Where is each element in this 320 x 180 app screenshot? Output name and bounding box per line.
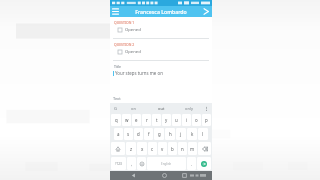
- staticText: y: [165, 117, 168, 123]
- button[interactable]: r: [142, 114, 151, 126]
- button[interactable]: Opened: [113, 25, 209, 35]
- staticText: Francesca Lombardo: [135, 8, 187, 15]
- button[interactable]: Backspace: [198, 142, 211, 155]
- staticText: out: [158, 106, 165, 111]
- button[interactable]: f: [144, 128, 153, 140]
- staticText: v: [161, 146, 164, 152]
- staticText: k: [191, 131, 194, 137]
- staticText: x: [141, 146, 144, 152]
- staticText: p: [205, 117, 208, 123]
- staticText: Opened: [125, 27, 141, 33]
- button[interactable]: k: [187, 128, 197, 140]
- button[interactable]: t: [152, 114, 161, 126]
- button[interactable]: v: [158, 142, 167, 155]
- staticText: ,: [131, 161, 133, 167]
- staticText: c: [151, 146, 154, 152]
- button[interactable]: o: [192, 114, 201, 126]
- button[interactable]: Send: [201, 6, 212, 17]
- staticText: w: [125, 117, 129, 123]
- staticText: q: [115, 117, 118, 123]
- staticText: r: [146, 117, 148, 123]
- button[interactable]: ?123: [111, 157, 126, 170]
- button[interactable]: More suggestions: [203, 105, 210, 112]
- staticText: Your steps turns me on: [115, 70, 163, 76]
- button[interactable]: Space: [147, 157, 186, 170]
- staticText: ?123: [115, 162, 122, 166]
- staticText: G: [114, 106, 118, 112]
- button[interactable]: g: [154, 128, 164, 140]
- button[interactable]: i: [182, 114, 191, 126]
- staticText: j: [180, 131, 182, 137]
- staticText: a: [117, 131, 120, 137]
- staticText: d: [137, 131, 140, 137]
- button[interactable]: out: [147, 103, 175, 113]
- button[interactable]: p: [202, 114, 211, 126]
- button[interactable]: q: [111, 114, 121, 126]
- staticText: s: [127, 131, 130, 137]
- button[interactable]: Opened: [113, 47, 209, 57]
- staticText: English: [161, 162, 172, 166]
- button[interactable]: Send message: [197, 157, 211, 170]
- staticText: Title: [114, 64, 121, 69]
- staticText: m: [190, 146, 195, 152]
- staticText: Text: [113, 96, 121, 101]
- staticText: h: [169, 131, 172, 137]
- button[interactable]: Emoji: [137, 157, 146, 170]
- staticText: f: [148, 131, 150, 137]
- staticText: g: [158, 131, 161, 137]
- staticText: on: [131, 106, 136, 111]
- staticText: o: [195, 117, 198, 123]
- button[interactable]: only: [175, 103, 203, 113]
- button[interactable]: e: [132, 114, 141, 126]
- button[interactable]: h: [165, 128, 175, 140]
- staticText: t: [156, 117, 158, 123]
- button[interactable]: Menu: [110, 6, 121, 17]
- staticText: e: [135, 117, 138, 123]
- staticText: u: [175, 117, 178, 123]
- button[interactable]: ,: [127, 157, 136, 170]
- staticText: QUESTION 1: [114, 20, 135, 25]
- button[interactable]: w: [122, 114, 131, 126]
- button[interactable]: y: [162, 114, 171, 126]
- staticText: Opened: [125, 49, 141, 55]
- button[interactable]: Back: [129, 171, 138, 180]
- button[interactable]: z: [126, 142, 136, 155]
- button[interactable]: n: [178, 142, 187, 155]
- staticText: n: [181, 146, 184, 152]
- staticText: z: [130, 146, 133, 152]
- staticText: .: [191, 161, 193, 167]
- button[interactable]: d: [134, 128, 143, 140]
- button[interactable]: m: [188, 142, 197, 155]
- staticText: QUESTION 2: [114, 42, 135, 47]
- button[interactable]: u: [172, 114, 181, 126]
- button[interactable]: Google search: [112, 105, 119, 112]
- staticText: b: [171, 146, 174, 152]
- button[interactable]: .: [187, 157, 196, 170]
- button[interactable]: c: [148, 142, 157, 155]
- button[interactable]: x: [137, 142, 147, 155]
- button[interactable]: Home: [160, 171, 169, 180]
- button[interactable]: l: [198, 128, 208, 140]
- button[interactable]: Recent apps: [180, 171, 189, 180]
- button[interactable]: s: [124, 128, 133, 140]
- button[interactable]: j: [176, 128, 186, 140]
- button[interactable]: b: [168, 142, 177, 155]
- staticText: i: [186, 117, 188, 123]
- staticText: only: [185, 106, 193, 111]
- staticText: l: [202, 131, 204, 137]
- button[interactable]: on: [119, 103, 147, 113]
- button[interactable]: Shift: [111, 142, 125, 155]
- button[interactable]: a: [114, 128, 123, 140]
